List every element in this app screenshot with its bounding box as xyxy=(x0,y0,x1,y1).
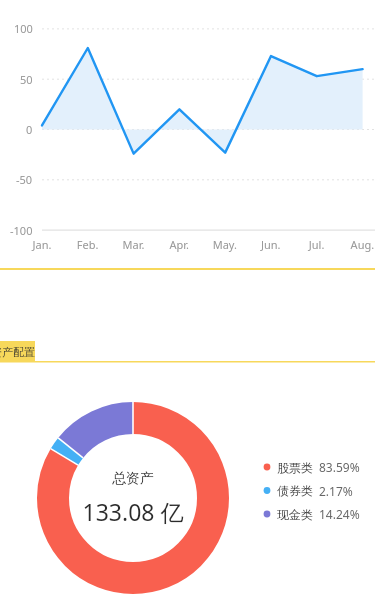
button[interactable]: Monthly performance line chart xyxy=(0,0,375,600)
button[interactable] xyxy=(0,0,375,600)
button[interactable]: Asset allocation donut chart xyxy=(0,0,375,600)
